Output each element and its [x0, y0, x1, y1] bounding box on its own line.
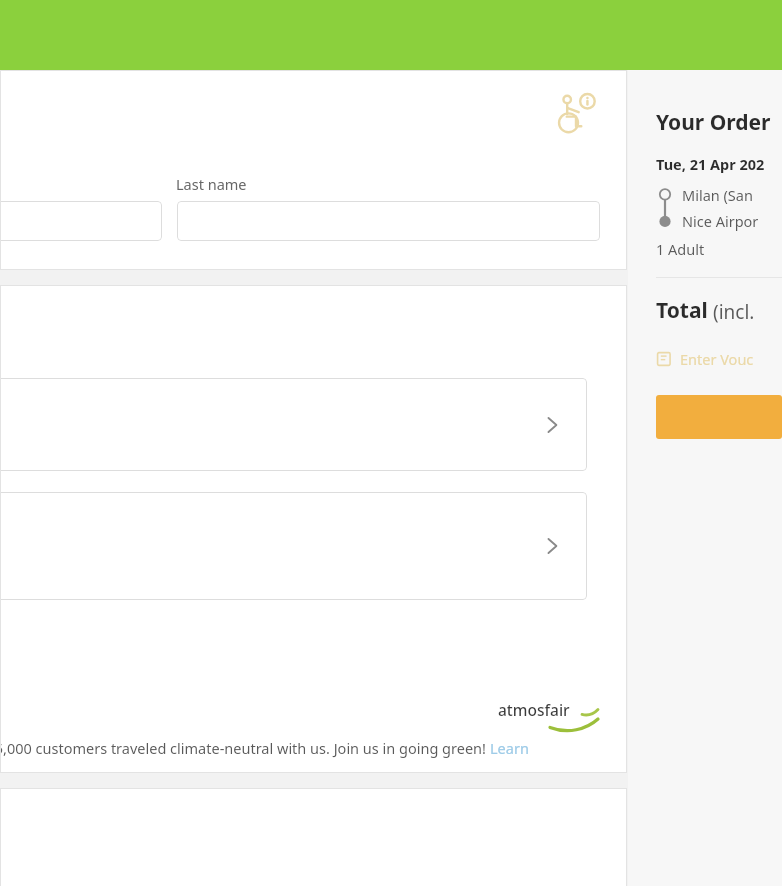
staticText: Last name	[176, 174, 247, 194]
staticText: Tue, 21 Apr 202	[656, 154, 765, 174]
staticText: Milan (San	[682, 185, 753, 205]
staticText: (incl.	[708, 299, 755, 325]
button[interactable]: Learn	[490, 738, 529, 758]
button[interactable]: Accessibility information	[554, 92, 598, 136]
staticText: atmosfair	[498, 699, 570, 720]
staticText: Nice Airpor	[682, 211, 759, 231]
button[interactable]: Enter Vouc	[656, 349, 754, 369]
staticText: Your Order	[656, 108, 771, 137]
staticText: Enter Vouc	[680, 349, 754, 369]
staticText: Total	[656, 296, 708, 325]
button[interactable]	[0, 201, 162, 241]
staticText: 1 Adult	[656, 239, 705, 259]
button[interactable]	[177, 201, 600, 241]
button[interactable]: Select option	[0, 378, 587, 471]
button[interactable]: Select option	[0, 492, 587, 600]
button[interactable]: Continue to payment	[656, 395, 782, 439]
staticText: n 5,000 customers traveled climate-neutr…	[0, 738, 490, 758]
staticText: Learn	[490, 738, 529, 758]
